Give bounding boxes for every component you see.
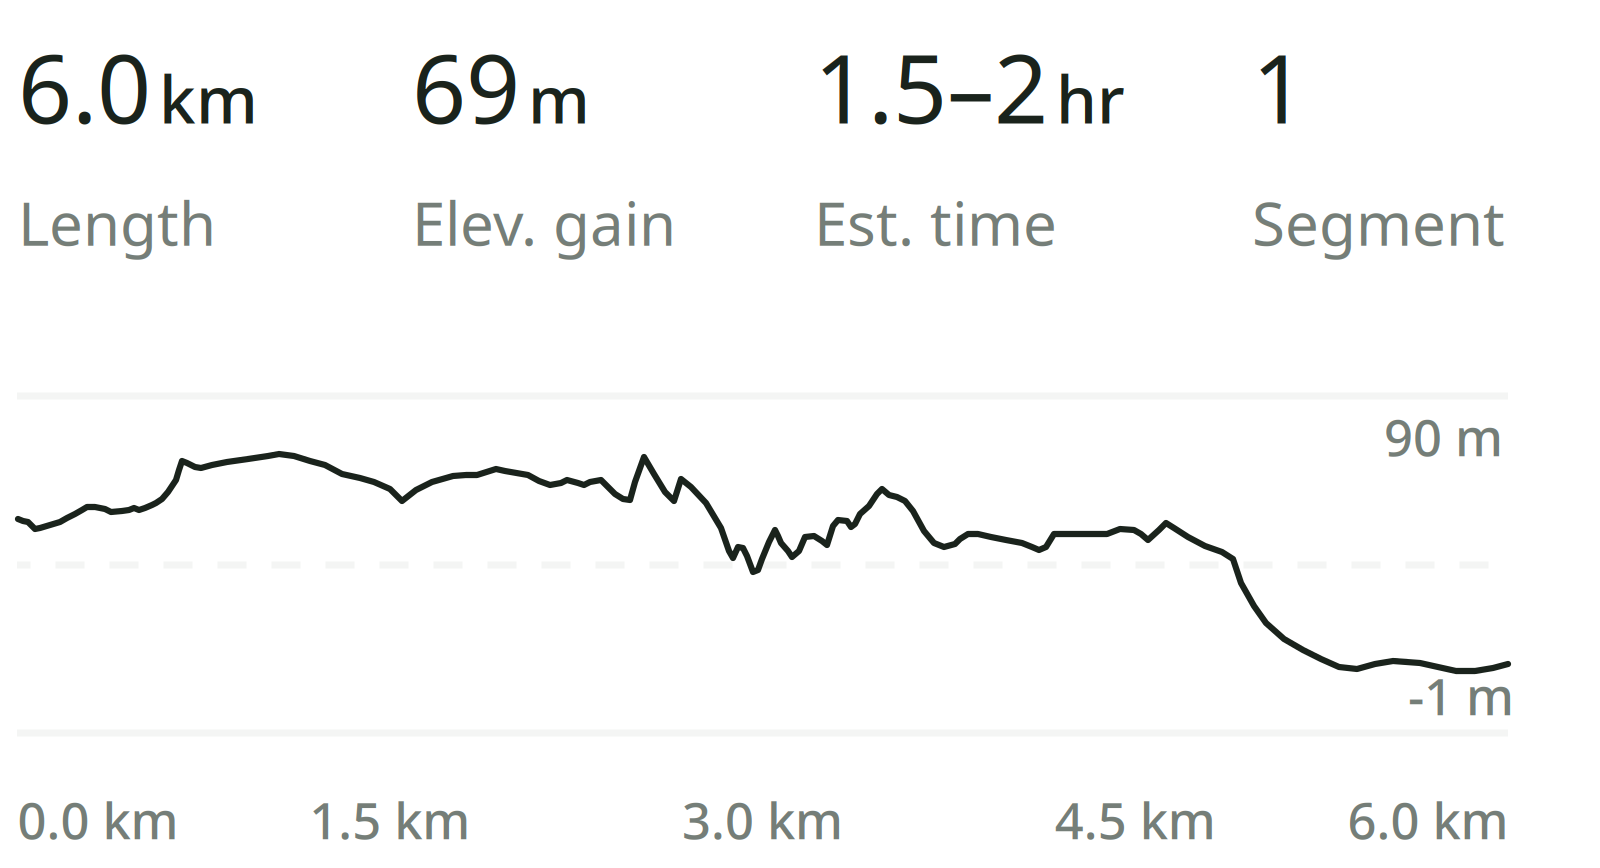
staticText: 6.0 [18, 24, 151, 150]
button[interactable]: 1 [1252, 24, 1552, 262]
staticText: 1 [1252, 24, 1306, 150]
button[interactable]: Elevation profile [17, 396, 1508, 733]
staticText: hr [1056, 55, 1125, 142]
button[interactable]: 6.0 [18, 24, 412, 262]
button[interactable]: 1.5–2 [814, 24, 1252, 262]
staticText: m [528, 55, 590, 142]
button[interactable]: 69 [412, 24, 814, 262]
staticText: Segment [1252, 183, 1505, 262]
staticText: km [159, 55, 258, 142]
staticText: -1 m [1408, 662, 1514, 729]
staticText: 4.5 km [1055, 786, 1216, 853]
staticText: 1.5 km [309, 786, 470, 853]
staticText: 3.0 km [682, 786, 843, 853]
staticText: 6.0 km [1347, 786, 1508, 853]
staticText: 90 m [1384, 403, 1503, 470]
staticText: 1.5–2 [814, 24, 1048, 150]
staticText: 0.0 km [17, 786, 178, 853]
staticText: 69 [412, 24, 520, 150]
staticText: Elev. gain [412, 183, 676, 262]
staticText: Length [18, 183, 216, 262]
staticText: Est. time [814, 183, 1057, 262]
